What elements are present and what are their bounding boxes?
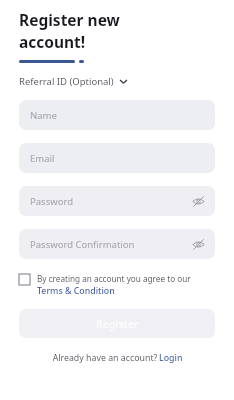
button[interactable]: Show password bbox=[189, 235, 207, 253]
button[interactable]: Name bbox=[19, 100, 215, 130]
staticText: Referral ID (Optional) bbox=[19, 75, 114, 88]
staticText: Password Confirmation bbox=[30, 238, 135, 251]
staticText: By creating an account you agree to our bbox=[37, 273, 191, 284]
staticText: Register bbox=[96, 317, 139, 331]
button[interactable]: Terms & Condition bbox=[37, 285, 115, 297]
staticText: account! bbox=[19, 31, 86, 52]
staticText: Password bbox=[30, 195, 73, 208]
button[interactable]: Password Confirmation bbox=[19, 229, 215, 259]
button[interactable]: Password bbox=[19, 186, 215, 216]
staticText: Already have an account? bbox=[51, 352, 159, 364]
button[interactable]: Accept terms checkbox bbox=[19, 273, 215, 297]
staticText: Name bbox=[30, 109, 57, 122]
button[interactable]: Login bbox=[159, 352, 183, 364]
button[interactable]: Referral ID (Optional) bbox=[19, 75, 128, 88]
staticText: Email bbox=[30, 152, 55, 165]
button[interactable]: Show password bbox=[189, 192, 207, 210]
other: Accept terms checkbox bbox=[19, 274, 30, 285]
staticText: Register new bbox=[19, 9, 120, 30]
button[interactable]: Email bbox=[19, 143, 215, 173]
